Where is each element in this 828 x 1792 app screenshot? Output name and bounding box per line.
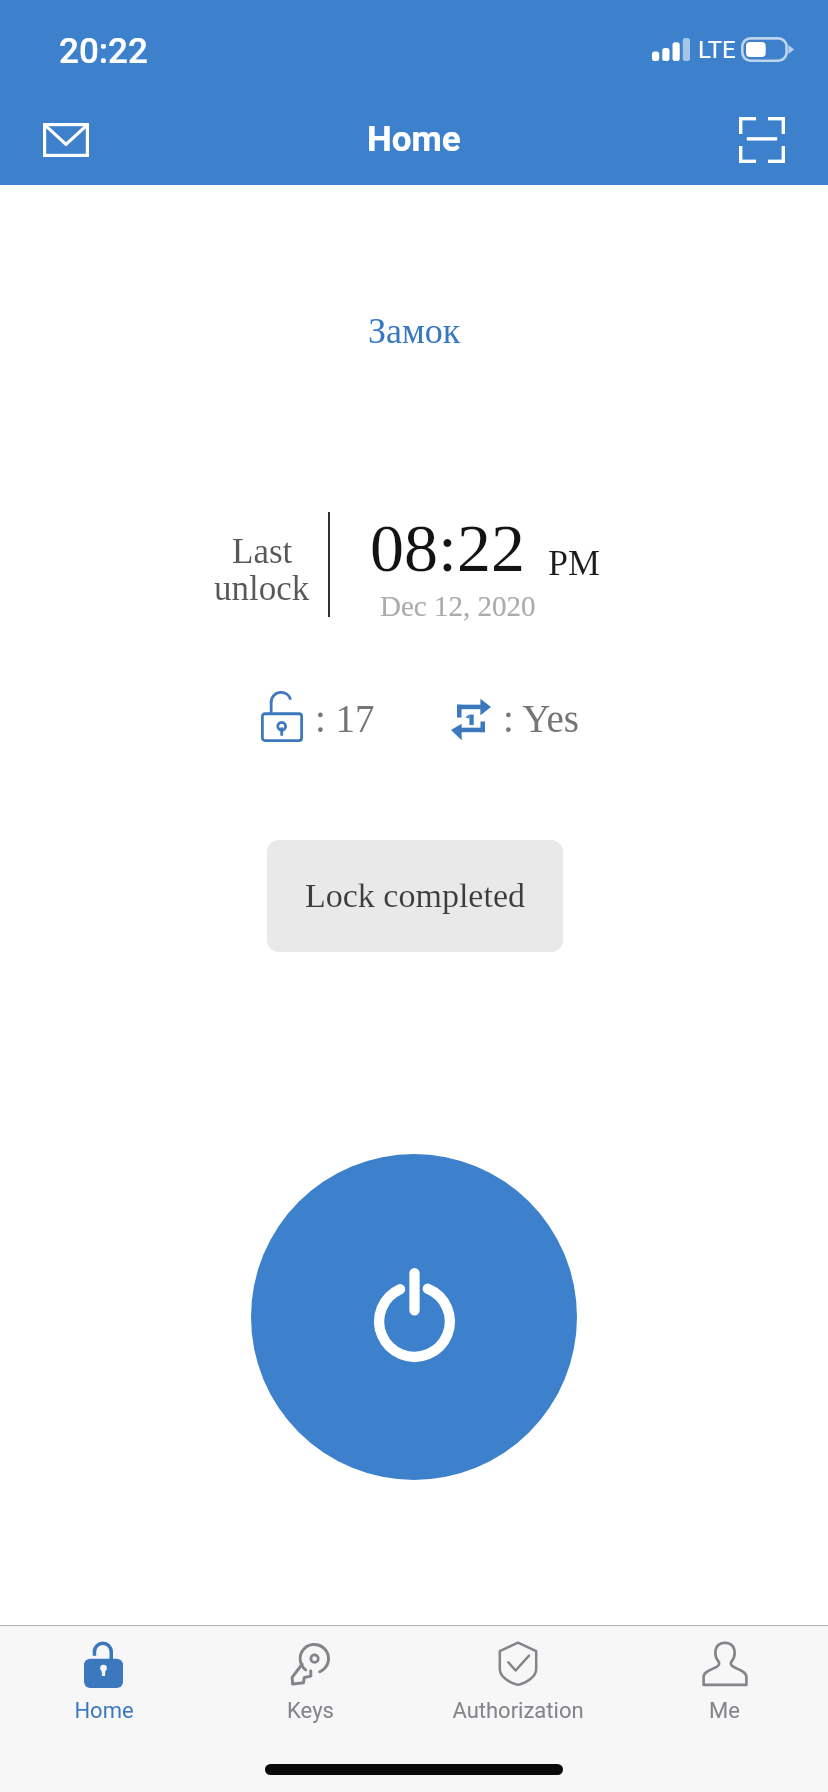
button[interactable]: Keys — [207, 1626, 414, 1752]
staticText: LTE — [698, 36, 736, 64]
staticText: 08:22 — [370, 510, 525, 585]
staticText: Замок — [368, 311, 461, 351]
staticText: Lock completed — [305, 877, 525, 915]
button[interactable]: Scan QR code — [727, 105, 796, 175]
staticText: unlock — [214, 569, 310, 608]
staticText: Me — [709, 1698, 740, 1724]
staticText: Home — [367, 119, 461, 160]
staticText: Home — [74, 1698, 134, 1724]
staticText: Dec 12, 2020 — [380, 590, 536, 622]
button[interactable]: Messages — [20, 111, 112, 169]
button[interactable]: Home — [0, 1626, 207, 1752]
staticText: Authorization — [452, 1698, 584, 1724]
button[interactable]: Me — [621, 1626, 828, 1752]
staticText: Last — [232, 532, 293, 571]
staticText: Keys — [287, 1698, 334, 1724]
staticText: : Yes — [503, 697, 579, 740]
button[interactable]: Authorization — [414, 1626, 621, 1752]
staticText: : 17 — [315, 697, 375, 740]
staticText: 20:22 — [59, 31, 148, 72]
staticText: PM — [548, 543, 601, 583]
button[interactable]: Power — [251, 1154, 577, 1480]
